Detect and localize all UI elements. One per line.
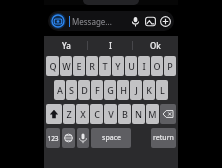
button[interactable]: A <box>54 80 65 100</box>
staticText: D <box>81 84 88 96</box>
staticText: return <box>153 133 174 143</box>
button[interactable]: G <box>104 80 116 100</box>
staticText: B <box>122 108 128 120</box>
staticText: K <box>146 84 152 96</box>
staticText: S <box>69 84 74 96</box>
staticText: N <box>135 108 142 120</box>
button[interactable]: H <box>117 80 129 100</box>
button[interactable]: X <box>76 104 89 124</box>
button[interactable]: W <box>60 56 72 76</box>
button[interactable]: R <box>86 56 98 76</box>
button[interactable]: D <box>78 80 90 100</box>
button[interactable]: Ya <box>44 36 88 54</box>
button[interactable]: S <box>66 80 77 100</box>
button[interactable]: T <box>99 56 111 76</box>
button[interactable]: Gallery <box>143 14 158 29</box>
staticText: C <box>94 108 100 120</box>
button[interactable]: P <box>164 56 176 76</box>
button[interactable]: I <box>138 56 150 76</box>
staticText: Z <box>66 108 72 120</box>
staticText: Ya <box>62 40 71 51</box>
button[interactable]: Add attachment <box>158 14 173 29</box>
button[interactable]: E <box>73 56 85 76</box>
button[interactable]: space <box>91 128 131 148</box>
button[interactable]: return <box>151 128 176 148</box>
staticText: Y <box>115 60 121 72</box>
button[interactable]: Q <box>46 56 59 76</box>
button[interactable]: I <box>88 36 133 54</box>
staticText: L <box>160 84 165 96</box>
staticText: M <box>148 108 157 120</box>
staticText: I <box>109 40 112 51</box>
button[interactable]: Voice input <box>77 128 89 148</box>
staticText: Q <box>49 60 57 72</box>
staticText: A <box>57 84 63 96</box>
button[interactable]: Backspace <box>160 104 176 124</box>
staticText: E <box>76 60 82 72</box>
button[interactable]: Voice message <box>128 14 143 29</box>
button[interactable]: Z <box>63 104 75 124</box>
button[interactable]: Camera <box>50 13 66 29</box>
button[interactable]: B <box>118 104 131 124</box>
button[interactable]: Shift <box>46 104 62 124</box>
staticText: Message... <box>72 16 112 27</box>
button[interactable]: O <box>151 56 163 76</box>
button[interactable]: Switch language <box>62 128 75 148</box>
button[interactable]: F <box>91 80 103 100</box>
button[interactable]: M <box>146 104 159 124</box>
button[interactable]: K <box>143 80 155 100</box>
staticText: I <box>142 60 146 72</box>
staticText: W <box>62 60 71 72</box>
staticText: V <box>108 108 114 120</box>
button[interactable]: L <box>156 80 168 100</box>
staticText: G <box>107 84 114 96</box>
button[interactable]: N <box>132 104 145 124</box>
staticText: H <box>120 84 127 96</box>
staticText: U <box>128 60 135 72</box>
staticText: 123 <box>47 134 59 143</box>
button[interactable]: C <box>90 104 103 124</box>
staticText: F <box>95 84 100 96</box>
staticText: J <box>135 84 138 96</box>
staticText: R <box>89 60 95 72</box>
staticText: X <box>80 108 86 120</box>
button[interactable]: Y <box>112 56 124 76</box>
staticText: P <box>167 60 173 72</box>
button[interactable]: V <box>104 104 117 124</box>
button[interactable]: J <box>130 80 142 100</box>
button[interactable]: Ok <box>133 36 178 54</box>
staticText: space <box>102 133 121 143</box>
staticText: Ok <box>150 40 161 51</box>
staticText: T <box>102 60 108 72</box>
staticText: O <box>153 60 161 72</box>
button[interactable]: Camera <box>48 11 174 31</box>
button[interactable]: U <box>125 56 137 76</box>
button[interactable]: 123 <box>46 128 60 148</box>
